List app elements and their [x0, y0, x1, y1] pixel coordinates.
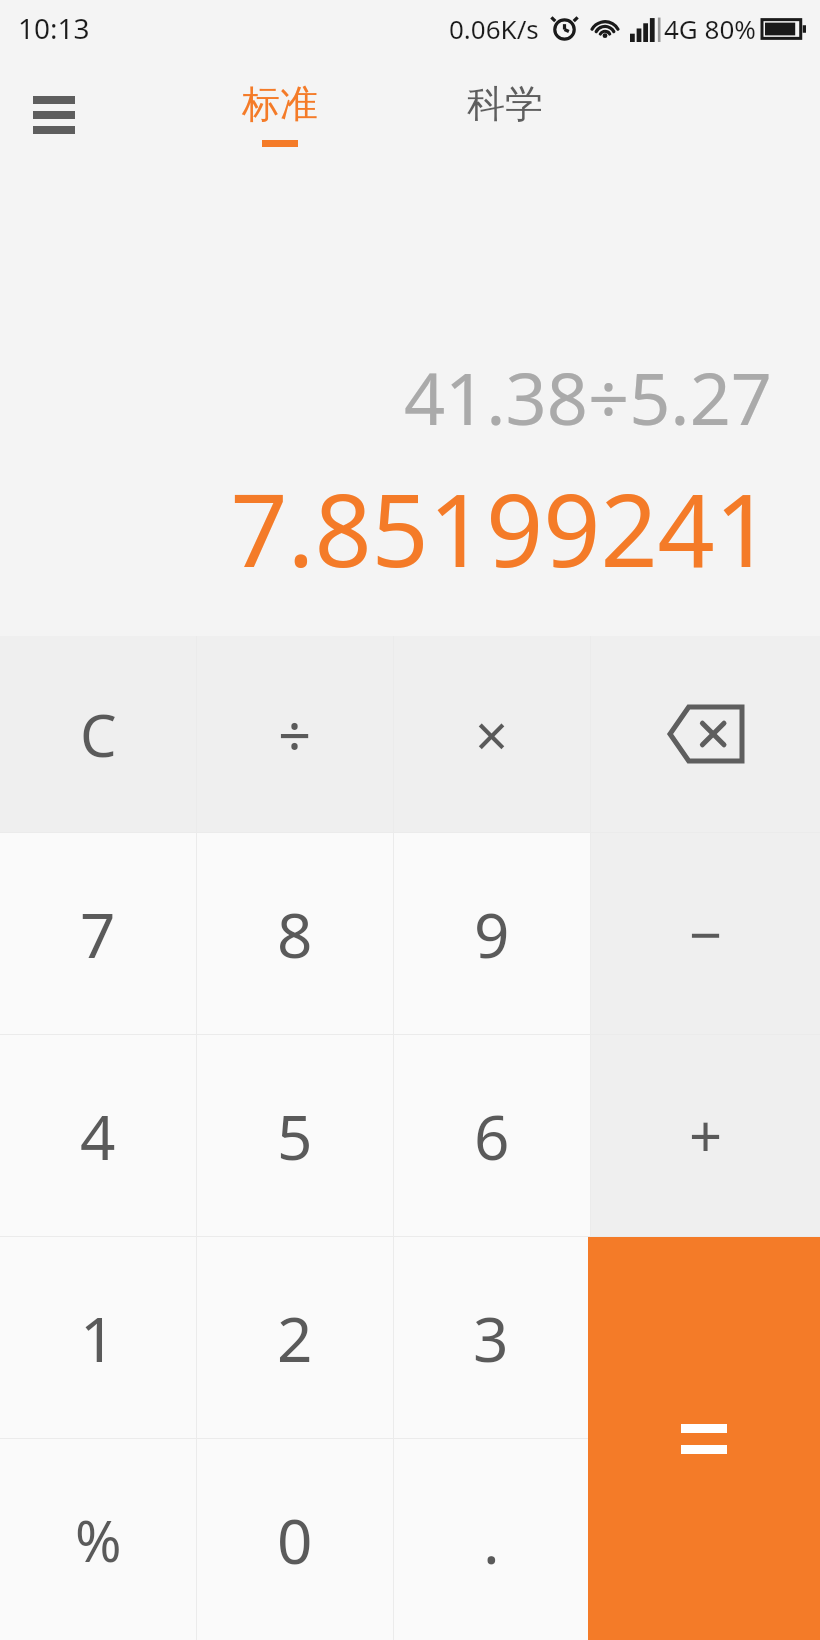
- staticText: 5: [277, 1094, 313, 1178]
- staticText: 9: [474, 892, 510, 976]
- button[interactable]: −: [591, 833, 820, 1034]
- staticText: 3: [473, 1296, 509, 1380]
- button[interactable]: 9: [394, 833, 590, 1034]
- staticText: 标准: [242, 80, 318, 128]
- staticText: 科学: [467, 80, 543, 128]
- staticText: 1: [80, 1296, 116, 1380]
- button[interactable]: ×: [394, 636, 590, 832]
- button[interactable]: .: [394, 1439, 588, 1640]
- button[interactable]: 3: [394, 1237, 588, 1438]
- button[interactable]: 7: [0, 833, 196, 1034]
- staticText: 10:13: [18, 9, 90, 47]
- staticText: ÷: [278, 695, 312, 774]
- staticText: 6: [474, 1094, 510, 1178]
- staticText: 8: [277, 892, 313, 976]
- button[interactable]: Menu: [14, 75, 94, 155]
- button[interactable]: ÷: [197, 636, 393, 832]
- staticText: 7: [80, 892, 116, 976]
- button[interactable]: 标准: [200, 56, 360, 174]
- staticText: 0: [277, 1498, 313, 1582]
- button[interactable]: 4: [0, 1035, 196, 1236]
- button[interactable]: 6: [394, 1035, 590, 1236]
- staticText: 2: [277, 1296, 313, 1380]
- button[interactable]: 科学: [425, 56, 585, 174]
- staticText: −: [689, 894, 723, 973]
- button[interactable]: 0: [197, 1439, 393, 1640]
- button[interactable]: %: [0, 1439, 196, 1640]
- staticText: ×: [475, 695, 509, 774]
- button[interactable]: C: [0, 636, 196, 832]
- staticText: 7.85199241: [230, 460, 772, 596]
- staticText: %: [75, 1502, 122, 1578]
- staticText: 41.38÷5.27: [403, 348, 772, 446]
- button[interactable]: 8: [197, 833, 393, 1034]
- staticText: C: [80, 695, 117, 774]
- button[interactable]: +: [591, 1035, 820, 1236]
- staticText: +: [689, 1096, 723, 1175]
- staticText: 4G 80%: [664, 11, 756, 46]
- staticText: 0.06K/s: [449, 11, 539, 46]
- staticText: 4: [80, 1094, 116, 1178]
- button[interactable]: 5: [197, 1035, 393, 1236]
- staticText: .: [483, 1498, 500, 1582]
- button[interactable]: 2: [197, 1237, 393, 1438]
- button[interactable]: Backspace: [591, 636, 820, 832]
- button[interactable]: Equals: [588, 1237, 820, 1640]
- button[interactable]: 1: [0, 1237, 196, 1438]
